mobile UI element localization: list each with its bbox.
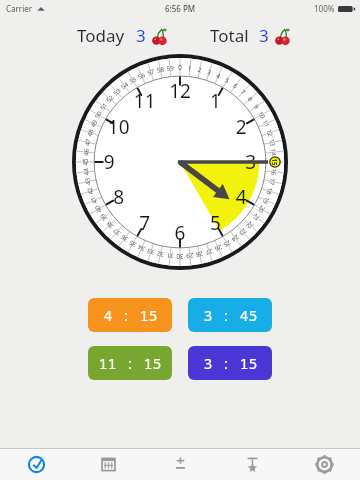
button[interactable]: Statistics: [144, 449, 216, 480]
staticText: 3: [259, 24, 269, 47]
button[interactable]: 11 : 15: [88, 346, 172, 380]
staticText: 3: [136, 24, 146, 47]
button[interactable]: History: [72, 449, 144, 480]
staticText: Carrier: [6, 3, 33, 14]
other: Cherry: [150, 28, 167, 44]
staticText: 3 : 15: [203, 353, 258, 373]
button[interactable]: Goals: [216, 449, 288, 480]
button[interactable]: Today: [77, 24, 167, 47]
staticText: 3 : 45: [203, 305, 258, 325]
staticText: Total: [210, 24, 249, 47]
button[interactable]: Timer: [0, 449, 72, 480]
staticText: 6:56 PM: [165, 3, 196, 14]
staticText: 11 : 15: [98, 353, 162, 373]
button[interactable]: 3 : 15: [188, 346, 272, 380]
staticText: Today: [77, 24, 125, 47]
button[interactable]: 4 : 15: [88, 298, 172, 332]
button[interactable]: Total: [210, 24, 290, 47]
button[interactable]: 3 : 45: [188, 298, 272, 332]
other: Cherry: [273, 28, 290, 44]
staticText: 100%: [314, 3, 335, 14]
other: Clock face: [72, 54, 288, 270]
button[interactable]: Settings: [288, 449, 360, 480]
staticText: 4 : 15: [103, 305, 158, 325]
